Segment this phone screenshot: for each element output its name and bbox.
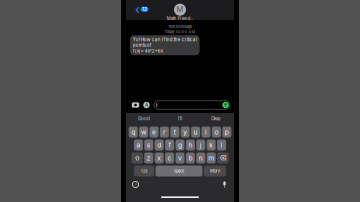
button[interactable]: a [134, 139, 143, 150]
button[interactable]: Take photo [131, 100, 140, 109]
staticText: g [178, 141, 182, 149]
button[interactable]: n [196, 152, 205, 163]
button[interactable]: q [129, 126, 138, 137]
staticText: › [191, 16, 193, 21]
staticText: p [225, 128, 229, 136]
staticText: t [174, 128, 176, 136]
staticText: h [188, 141, 192, 149]
button[interactable]: M [167, 0, 193, 21]
staticText: v [178, 154, 182, 162]
staticText: l [221, 141, 223, 149]
button[interactable]: x [155, 152, 164, 163]
button[interactable]: y [181, 126, 190, 137]
button[interactable]: o [212, 126, 221, 137]
button[interactable]: Okay [198, 113, 234, 124]
staticText: Today 10:00 AM [164, 29, 195, 34]
button[interactable]: k [207, 139, 216, 150]
staticText: M [176, 5, 183, 14]
staticText: n [199, 154, 203, 162]
staticText: q [131, 128, 135, 136]
staticText: y [183, 128, 187, 136]
button[interactable]: w [139, 126, 148, 137]
staticText: Yo! How can I find the critical [133, 37, 197, 42]
staticText: Math Friend [167, 16, 191, 21]
staticText: return [210, 169, 220, 173]
staticText: f [169, 141, 171, 149]
staticText: s [147, 141, 151, 149]
button[interactable]: m [207, 152, 216, 163]
staticText: o [214, 128, 218, 136]
staticText: c [168, 154, 172, 162]
button[interactable]: return [204, 165, 226, 176]
button[interactable]: Apps [142, 100, 151, 109]
button[interactable]: l [217, 139, 226, 150]
button[interactable]: t [170, 126, 179, 137]
button[interactable]: c [165, 152, 174, 163]
staticText: points of [133, 42, 152, 48]
staticText: z [147, 154, 151, 162]
button[interactable]: f [165, 139, 174, 150]
button[interactable]: s [144, 139, 153, 150]
button[interactable]: i [201, 126, 210, 137]
button[interactable]: e [149, 126, 158, 137]
button[interactable]: v [175, 152, 184, 163]
staticText: a [136, 141, 140, 149]
staticText: w [141, 128, 146, 136]
button[interactable]: Good [126, 113, 162, 124]
button[interactable]: Dictate [220, 180, 229, 189]
staticText: ⌫ [219, 154, 226, 162]
button[interactable]: 123 [134, 165, 154, 176]
staticText: x [157, 154, 161, 162]
staticText: I'll [178, 116, 182, 121]
button[interactable]: h [186, 139, 195, 150]
staticText: Good [138, 116, 150, 121]
staticText: ‹ [135, 2, 140, 16]
button[interactable]: Emoji keyboard [131, 180, 140, 189]
button[interactable]: g [175, 139, 184, 150]
staticText: 12 [142, 6, 147, 12]
button[interactable]: b [186, 152, 195, 163]
staticText: j [200, 141, 202, 149]
staticText: d [157, 141, 161, 149]
staticText: r [163, 128, 166, 136]
staticText: ⇧ [134, 154, 140, 162]
staticText: m [208, 154, 214, 162]
button[interactable]: I'll [162, 113, 198, 124]
staticText: Okay [211, 116, 221, 121]
button[interactable]: j [196, 139, 205, 150]
staticText: :) [134, 182, 136, 187]
staticText: space [174, 169, 184, 173]
button[interactable]: space [155, 165, 202, 176]
button[interactable]: z [144, 152, 153, 163]
staticText: e [152, 128, 156, 136]
button[interactable]: ⌫ [217, 152, 229, 163]
staticText: 123 [141, 169, 147, 173]
staticText: ↑ [224, 102, 228, 108]
button[interactable]: Back [126, 2, 148, 16]
staticText: k [209, 141, 213, 149]
staticText: i [205, 128, 207, 136]
staticText: f(x)= 4x^2+6x [133, 48, 163, 54]
button[interactable]: d [155, 139, 164, 150]
button[interactable]: u [191, 126, 200, 137]
staticText: b [188, 154, 192, 162]
button[interactable]: p [222, 126, 231, 137]
button[interactable]: Send [222, 101, 229, 109]
staticText: u [194, 128, 198, 136]
button[interactable]: ⇧ [131, 152, 143, 163]
button[interactable]: r [160, 126, 169, 137]
staticText: A [145, 102, 148, 108]
staticText: Text Message [168, 24, 192, 29]
